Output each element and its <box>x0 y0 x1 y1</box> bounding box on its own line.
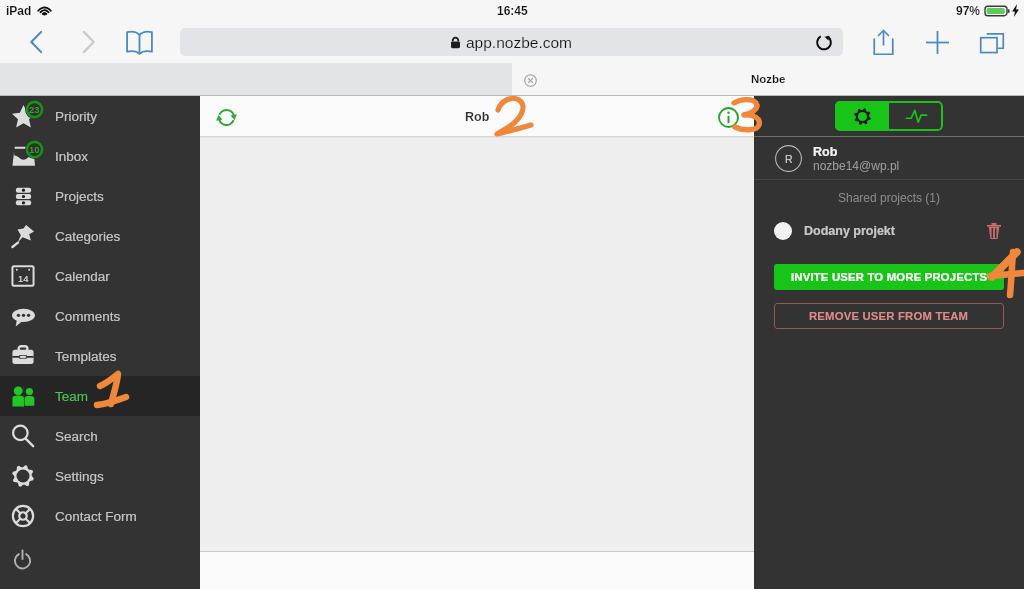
button[interactable]: Settings <box>0 456 200 496</box>
staticText: nozbe14@wp.pl <box>813 159 900 172</box>
staticText: Nozbe <box>751 73 786 86</box>
staticText: 97% <box>956 4 981 17</box>
staticText: Comments <box>55 309 121 324</box>
staticText: Rob <box>465 110 490 124</box>
button[interactable]: app.nozbe.com <box>180 28 843 56</box>
button[interactable]: Share <box>865 24 901 60</box>
staticText: app.nozbe.com <box>466 34 572 51</box>
button[interactable]: Log out <box>0 536 200 582</box>
button[interactable]: Activity <box>889 101 943 131</box>
staticText: 16:45 <box>497 4 528 17</box>
button[interactable] <box>0 63 512 96</box>
staticText: R <box>785 153 793 165</box>
button[interactable]: Close tab <box>519 69 541 91</box>
staticText: INVITE USER TO MORE PROJECTS <box>791 271 988 284</box>
staticText: Contact Form <box>55 509 137 524</box>
button[interactable]: Show tabs <box>974 24 1010 60</box>
button[interactable]: Bookmarks <box>121 24 157 60</box>
button[interactable]: New tab <box>919 24 955 60</box>
staticText: 14 <box>18 273 29 284</box>
staticText: Calendar <box>55 269 110 284</box>
button[interactable]: Contact Form <box>0 496 200 536</box>
staticText: Team <box>55 389 89 404</box>
button[interactable]: Info <box>714 103 742 131</box>
button[interactable]: Dodany projekt <box>754 220 1024 242</box>
button[interactable]: 14 <box>0 256 200 296</box>
button[interactable]: INVITE USER TO MORE PROJECTS <box>774 264 1004 290</box>
button[interactable]: Team <box>0 376 200 416</box>
staticText: Dodany projekt <box>804 224 895 238</box>
button[interactable]: 23 <box>0 96 200 136</box>
staticText: Templates <box>55 349 117 364</box>
staticText: 10 <box>29 144 40 155</box>
button[interactable]: Sync <box>210 101 242 133</box>
button[interactable]: Reload <box>811 29 837 55</box>
staticText: Categories <box>55 229 121 244</box>
staticText: REMOVE USER FROM TEAM <box>809 310 969 323</box>
button[interactable]: Search <box>0 416 200 456</box>
staticText: iPad <box>6 4 32 17</box>
button[interactable]: Categories <box>0 216 200 256</box>
staticText: Projects <box>55 189 104 204</box>
staticText: Inbox <box>55 149 89 164</box>
button[interactable]: Close tab <box>512 63 1024 96</box>
button[interactable]: R <box>754 137 1024 179</box>
button[interactable]: Settings <box>835 101 889 131</box>
staticText: Rob <box>813 145 838 159</box>
staticText: Shared projects (1) <box>754 191 1024 204</box>
button[interactable]: 10 <box>0 136 200 176</box>
staticText: Settings <box>55 469 104 484</box>
button[interactable]: Templates <box>0 336 200 376</box>
staticText: 23 <box>29 104 40 115</box>
button[interactable]: Forward <box>70 24 106 60</box>
staticText: Search <box>55 429 98 444</box>
button[interactable]: Comments <box>0 296 200 336</box>
button[interactable]: REMOVE USER FROM TEAM <box>774 303 1004 329</box>
button[interactable]: Remove from project <box>981 220 1007 242</box>
staticText: Priority <box>55 109 98 124</box>
button[interactable]: Projects <box>0 176 200 216</box>
button[interactable]: Back <box>18 24 54 60</box>
